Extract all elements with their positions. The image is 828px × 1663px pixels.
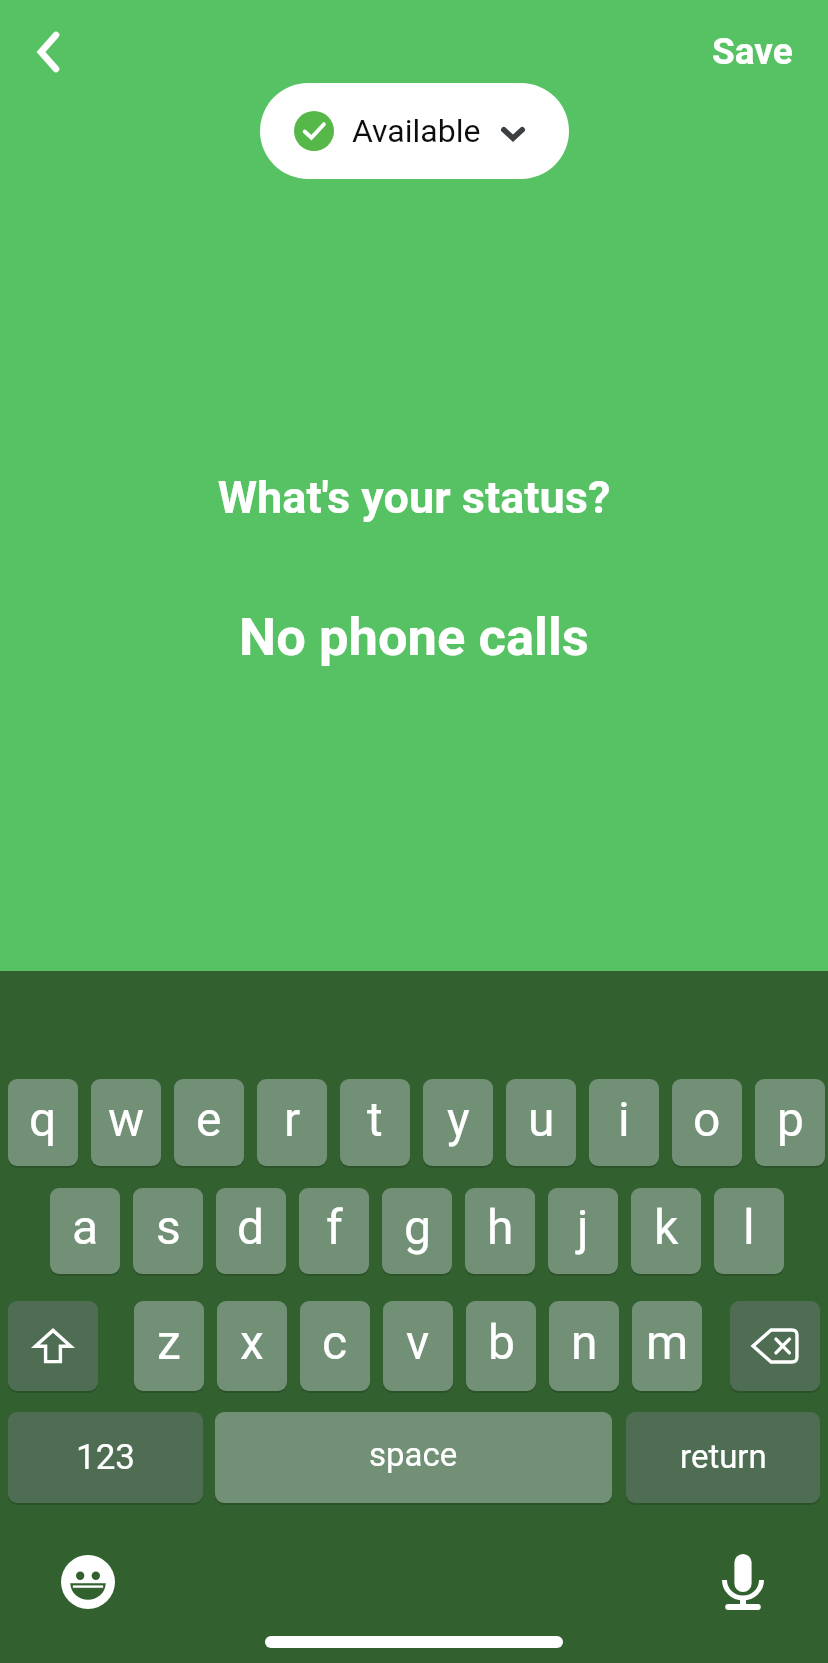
staticText: f [326, 1199, 343, 1255]
staticText: Save [712, 30, 793, 73]
staticText: y [447, 1091, 470, 1147]
staticText: What's your status? [0, 471, 828, 524]
button[interactable]: g [382, 1188, 452, 1274]
staticText: n [571, 1314, 598, 1370]
button[interactable]: i [589, 1079, 659, 1166]
staticText: j [577, 1199, 589, 1255]
button[interactable]: Shift [8, 1301, 98, 1391]
button[interactable]: s [133, 1188, 203, 1274]
button[interactable]: e [174, 1079, 244, 1166]
staticText: t [367, 1091, 383, 1147]
staticText: d [237, 1199, 265, 1255]
staticText: 123 [76, 1437, 136, 1478]
button[interactable]: c [300, 1301, 370, 1391]
staticText: u [528, 1091, 555, 1147]
staticText: w [108, 1091, 145, 1147]
button[interactable]: x [217, 1301, 287, 1391]
button[interactable]: h [465, 1188, 535, 1274]
staticText: l [743, 1199, 755, 1255]
staticText: a [72, 1199, 99, 1255]
button[interactable]: l [714, 1188, 784, 1274]
staticText: c [322, 1314, 348, 1370]
button[interactable]: b [466, 1301, 536, 1391]
button[interactable]: n [549, 1301, 619, 1391]
staticText: return [680, 1437, 767, 1476]
button[interactable]: Save [698, 16, 807, 87]
button[interactable]: 123 [8, 1412, 203, 1503]
button[interactable]: Emoji [55, 1549, 121, 1615]
button[interactable]: u [506, 1079, 576, 1166]
button[interactable]: z [134, 1301, 204, 1391]
button[interactable]: space [215, 1412, 612, 1503]
staticText: s [156, 1199, 181, 1255]
staticText: k [654, 1199, 679, 1255]
button[interactable]: Voice input [713, 1548, 777, 1620]
button[interactable]: Available [260, 83, 569, 179]
button[interactable]: y [423, 1079, 493, 1166]
button[interactable]: q [8, 1079, 78, 1166]
button[interactable]: Back [12, 16, 84, 88]
staticText: No phone calls [0, 606, 828, 668]
button[interactable]: a [50, 1188, 120, 1274]
staticText: x [240, 1314, 264, 1370]
staticText: p [777, 1091, 804, 1147]
button[interactable]: p [755, 1079, 825, 1166]
staticText: r [284, 1091, 301, 1147]
staticText: e [196, 1091, 222, 1147]
button[interactable]: t [340, 1079, 410, 1166]
staticText: b [488, 1314, 515, 1370]
button[interactable]: v [383, 1301, 453, 1391]
staticText: m [646, 1314, 689, 1370]
staticText: z [157, 1314, 181, 1370]
button[interactable]: r [257, 1079, 327, 1166]
button[interactable]: j [548, 1188, 618, 1274]
staticText: g [404, 1199, 431, 1255]
button[interactable]: d [216, 1188, 286, 1274]
staticText: h [487, 1199, 514, 1255]
button[interactable]: f [299, 1188, 369, 1274]
staticText: i [618, 1091, 630, 1147]
staticText: space [369, 1435, 458, 1474]
button[interactable]: k [631, 1188, 701, 1274]
button[interactable]: o [672, 1079, 742, 1166]
staticText: o [693, 1091, 721, 1147]
staticText: q [29, 1091, 57, 1147]
button[interactable]: m [632, 1301, 702, 1391]
staticText: v [406, 1314, 430, 1370]
button[interactable]: return [626, 1412, 820, 1503]
button[interactable]: w [91, 1079, 161, 1166]
button[interactable]: Backspace [730, 1301, 820, 1391]
staticText: Available [352, 112, 481, 150]
